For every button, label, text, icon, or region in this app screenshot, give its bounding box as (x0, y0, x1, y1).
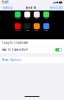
staticText: Photos (25, 18, 30, 20)
staticText: Apple (25, 30, 29, 31)
button[interactable]: Photos (22, 11, 32, 20)
button[interactable]: Msgs (41, 11, 51, 20)
button[interactable]: Copy to Clipboard (0, 39, 64, 46)
button[interactable]: Apple (22, 23, 32, 31)
button[interactable]: Files (32, 11, 41, 20)
staticText: Music (35, 30, 39, 31)
button[interactable]: Save to Camera Roll (0, 46, 64, 53)
button[interactable]: Share Options (0, 57, 64, 63)
staticText: Phone (15, 18, 20, 20)
staticText: Msgs (44, 18, 48, 20)
staticText: Select All (50, 6, 63, 9)
button[interactable]: Maps (41, 23, 51, 31)
button[interactable]: Phone (13, 11, 22, 20)
staticText: ‹ Gallery (1, 6, 12, 9)
staticText: Save to Camera Roll (2, 48, 28, 51)
staticText: Share Options (2, 58, 21, 62)
staticText: YouTube (14, 30, 21, 31)
staticText: Files (35, 18, 38, 20)
staticText: 9:41 (2, 1, 9, 4)
button[interactable]: Select All (50, 5, 64, 10)
staticText: Copy to Clipboard (2, 41, 28, 44)
staticText: Send To (25, 6, 36, 9)
button[interactable]: ‹ Gallery (0, 5, 12, 10)
staticText: Maps (44, 30, 48, 31)
button[interactable]: Music (32, 23, 41, 31)
button[interactable]: YouTube (13, 23, 22, 31)
